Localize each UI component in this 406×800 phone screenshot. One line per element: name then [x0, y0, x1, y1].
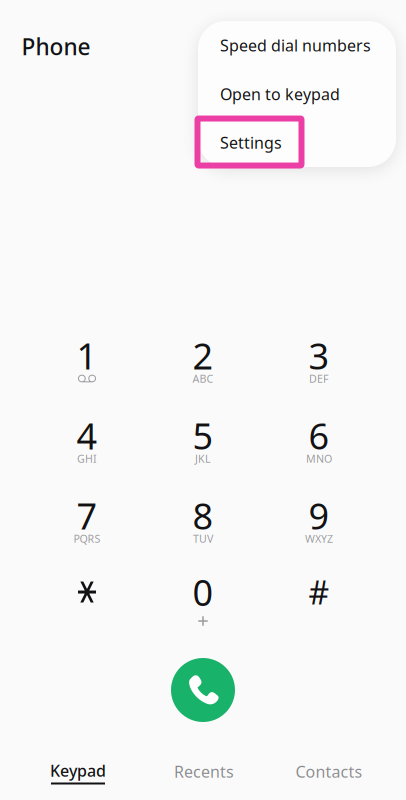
button[interactable]: Speed dial numbers [198, 21, 396, 70]
staticText: Speed dial numbers [220, 35, 371, 56]
staticText: TUV [193, 531, 213, 546]
staticText: PQRS [73, 531, 100, 546]
button[interactable]: 2 [145, 322, 261, 402]
button[interactable]: 1 [29, 322, 145, 402]
button[interactable]: Keypad [14, 748, 142, 794]
button[interactable]: 3 [261, 322, 377, 402]
staticText: JKL [195, 451, 211, 466]
button[interactable]: Call [171, 658, 235, 722]
staticText: GHI [77, 451, 97, 466]
button[interactable]: # [261, 558, 377, 638]
staticText: Open to keypad [220, 83, 340, 105]
staticText: 3 [308, 332, 329, 379]
button[interactable]: Settings [198, 118, 396, 167]
staticText: 0 [192, 568, 213, 616]
button[interactable]: 7 [29, 482, 145, 562]
staticText: 9 [308, 492, 329, 539]
staticText: Phone [21, 31, 90, 61]
staticText: WXYZ [305, 531, 333, 546]
button[interactable]: Recents [140, 748, 268, 794]
button[interactable]: 9 [261, 482, 377, 562]
staticText: 2 [192, 332, 213, 379]
staticText: ABC [192, 371, 213, 386]
button[interactable]: 8 [145, 482, 261, 562]
button[interactable]: Open to keypad [198, 70, 396, 118]
button[interactable]: 0 [145, 558, 261, 638]
staticText: 6 [308, 412, 329, 459]
staticText: Settings [220, 132, 282, 153]
staticText: 8 [192, 492, 213, 539]
staticText: 5 [192, 412, 213, 459]
button[interactable] [29, 558, 145, 638]
button[interactable]: 6 [261, 402, 377, 482]
button[interactable]: Contacts [265, 748, 393, 794]
staticText: Keypad [50, 760, 106, 781]
staticText: 4 [76, 412, 97, 459]
staticText: DEF [309, 371, 329, 386]
staticText: # [308, 571, 329, 613]
staticText: Contacts [295, 761, 362, 782]
staticText: MNO [306, 451, 332, 466]
staticText: 1 [76, 332, 97, 379]
button[interactable]: 4 [29, 402, 145, 482]
staticText: 7 [76, 492, 97, 539]
staticText: Recents [174, 761, 234, 782]
button[interactable]: 5 [145, 402, 261, 482]
